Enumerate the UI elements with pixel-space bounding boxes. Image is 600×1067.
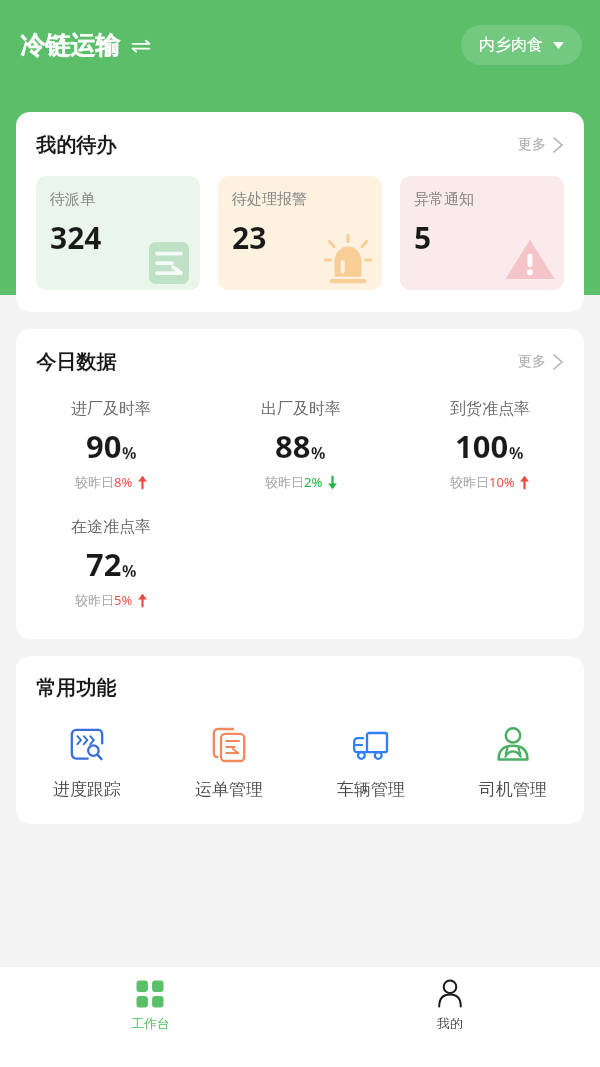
staticText: 5%: [114, 591, 133, 609]
button[interactable]: 运单管理: [158, 725, 300, 800]
staticText: %: [311, 442, 326, 464]
button[interactable]: 到货准点率: [395, 399, 584, 491]
button[interactable]: Switch: [130, 35, 152, 57]
button[interactable]: 待派单: [36, 176, 200, 290]
staticText: 100: [455, 425, 509, 467]
staticText: 5: [414, 217, 432, 258]
staticText: 我的待办: [36, 133, 116, 158]
staticText: 90: [86, 425, 122, 467]
staticText: 出厂及时率: [261, 399, 341, 419]
staticText: 更多: [518, 136, 546, 154]
staticText: 司机管理: [479, 779, 547, 800]
button[interactable]: 工作台: [0, 967, 300, 1067]
staticText: 较昨日: [75, 592, 114, 608]
button[interactable]: 车辆管理: [300, 725, 442, 800]
staticText: 进度跟踪: [53, 779, 121, 800]
staticText: 常用功能: [36, 676, 116, 701]
staticText: 2%: [304, 473, 323, 491]
staticText: 待派单: [50, 190, 95, 209]
staticText: %: [122, 442, 137, 464]
button[interactable]: 我的: [300, 967, 600, 1067]
button[interactable]: 司机管理: [442, 725, 584, 800]
staticText: 较昨日: [75, 474, 114, 490]
staticText: 10%: [489, 473, 515, 491]
button[interactable]: 在途准点率: [16, 517, 206, 609]
staticText: 较昨日: [265, 474, 304, 490]
staticText: 23: [232, 217, 267, 258]
staticText: 到货准点率: [450, 399, 530, 419]
button[interactable]: 更多: [514, 349, 566, 375]
staticText: 72: [86, 543, 122, 585]
staticText: 较昨日: [450, 474, 489, 490]
staticText: 我的: [437, 1015, 463, 1031]
staticText: 工作台: [131, 1015, 170, 1031]
staticText: 运单管理: [195, 779, 263, 800]
button[interactable]: 待处理报警: [218, 176, 382, 290]
button[interactable]: 更多: [514, 132, 566, 158]
staticText: 进厂及时率: [71, 399, 151, 419]
button[interactable]: 异常通知: [400, 176, 564, 290]
staticText: 88: [275, 425, 311, 467]
staticText: 8%: [114, 473, 133, 491]
staticText: 车辆管理: [337, 779, 405, 800]
button[interactable]: 进度跟踪: [16, 725, 158, 800]
button[interactable]: 进厂及时率: [16, 399, 206, 491]
staticText: %: [509, 442, 524, 464]
button[interactable]: 内乡肉食: [461, 25, 582, 65]
staticText: 324: [50, 217, 102, 258]
staticText: 在途准点率: [71, 517, 151, 537]
staticText: 内乡肉食: [479, 35, 543, 55]
staticText: 今日数据: [36, 350, 116, 375]
staticText: 冷链运输: [20, 30, 120, 61]
staticText: %: [122, 560, 137, 582]
button[interactable]: 出厂及时率: [206, 399, 395, 491]
staticText: 更多: [518, 353, 546, 371]
staticText: 待处理报警: [232, 190, 307, 209]
staticText: 异常通知: [414, 190, 474, 209]
